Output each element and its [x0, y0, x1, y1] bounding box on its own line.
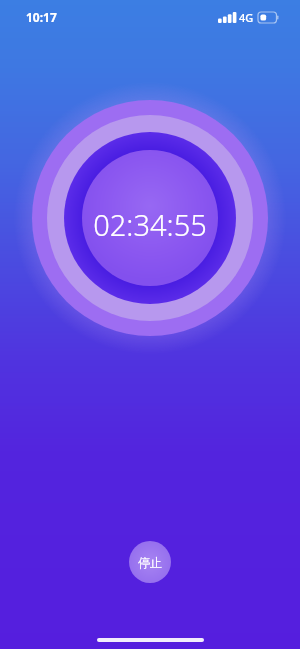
button[interactable]: 停止	[129, 541, 171, 583]
staticText: 10:17	[26, 9, 57, 25]
staticText: 02:34:55	[93, 205, 207, 244]
staticText: 停止	[138, 555, 162, 570]
staticText: 4G	[239, 10, 254, 25]
